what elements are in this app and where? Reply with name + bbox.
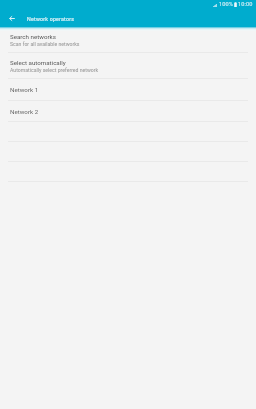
staticText: Scan for all available networks: [10, 41, 80, 47]
staticText: Network 1: [10, 86, 39, 93]
staticText: Select automatically: [10, 59, 66, 66]
button[interactable]: Network 2: [0, 101, 256, 121]
staticText: 100%: [219, 1, 233, 8]
staticText: Search networks: [10, 33, 56, 40]
button[interactable]: Network 1: [0, 79, 256, 100]
button[interactable]: Select automatically: [0, 53, 256, 78]
staticText: Network operators: [27, 16, 75, 22]
button[interactable]: Search networks: [0, 32, 256, 52]
staticText: 10:00: [238, 1, 253, 8]
staticText: Network 2: [10, 108, 39, 115]
button[interactable]: Navigate up: [3, 11, 20, 27]
staticText: Automatically select preferred network: [10, 67, 99, 73]
